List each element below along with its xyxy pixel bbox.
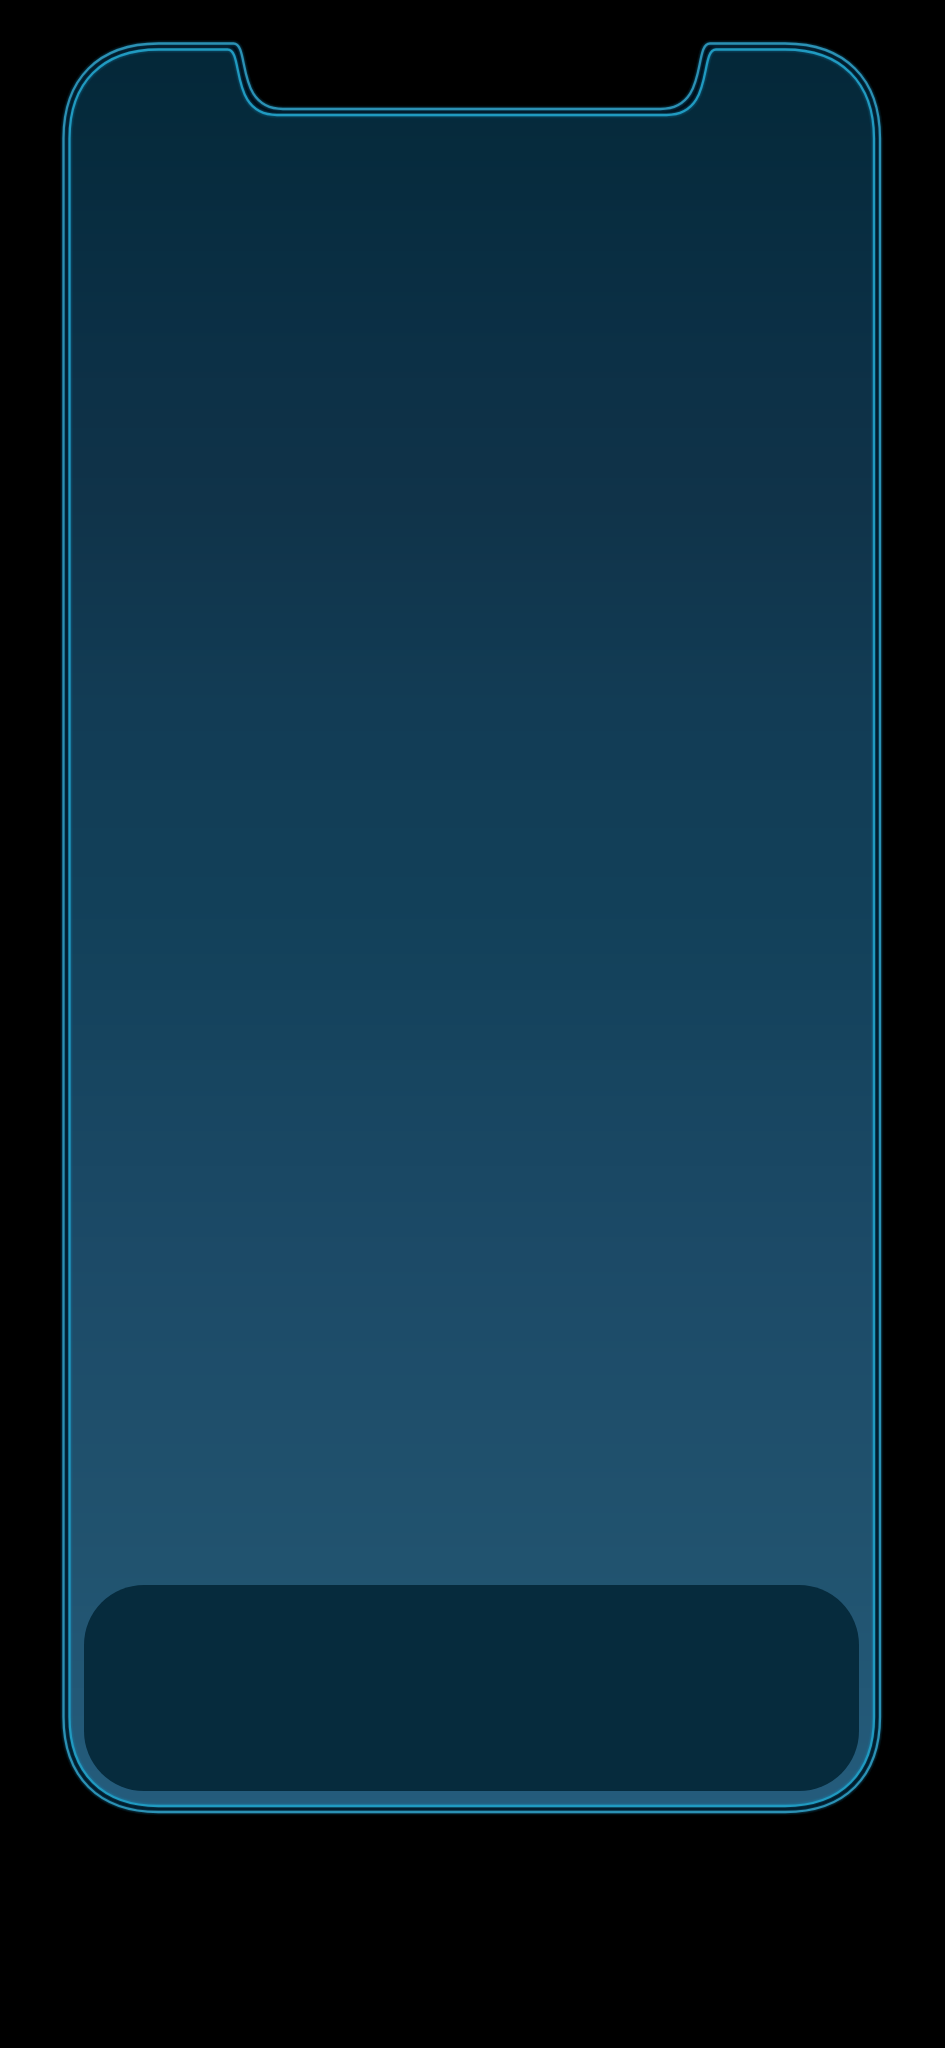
button[interactable]: Dock [84,1585,859,1791]
button[interactable]: Home screen [70,50,875,1807]
